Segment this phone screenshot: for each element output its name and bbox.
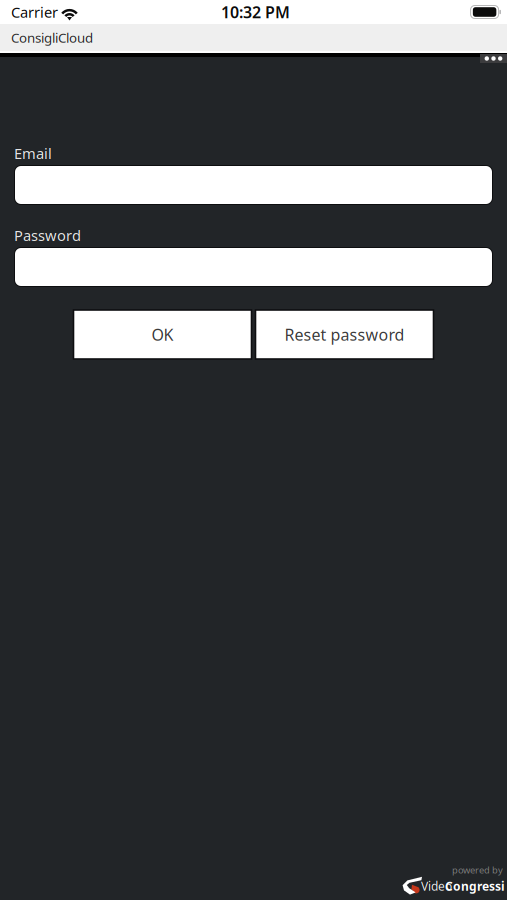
staticText: Carrier <box>11 2 58 22</box>
staticText: Password <box>14 225 81 245</box>
staticText: OK <box>151 324 173 345</box>
staticText: ConsigliCloud <box>11 29 93 46</box>
staticText: Video <box>421 878 452 894</box>
staticText: Reset password <box>284 324 404 345</box>
staticText: Congressi <box>445 878 505 894</box>
button[interactable]: Reset password <box>255 310 433 359</box>
button[interactable]: OK <box>73 310 251 359</box>
button[interactable]: More options <box>480 54 507 63</box>
staticText: 10:32 PM <box>221 1 290 23</box>
staticText: Email <box>14 143 52 163</box>
staticText: powered by <box>452 864 503 876</box>
